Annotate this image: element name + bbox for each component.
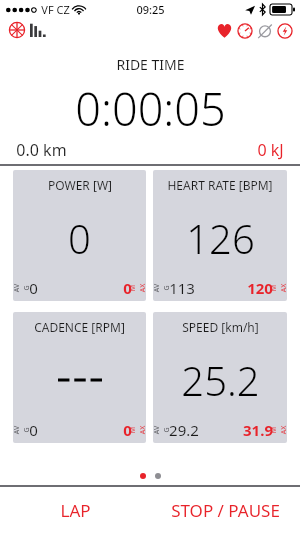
staticText: AVG — [153, 283, 172, 293]
staticText: RIDE TIME — [116, 55, 185, 74]
button[interactable]: Page 1 — [140, 473, 146, 479]
staticText: 0.0 km — [16, 139, 67, 161]
button[interactable]: STOP / PAUSE — [150, 487, 300, 533]
staticText: 0 — [29, 278, 38, 298]
staticText: 0 — [123, 420, 132, 440]
staticText: CADENCE [RPM] — [34, 319, 125, 335]
staticText: MAX — [128, 425, 146, 435]
button[interactable]: HEART RATE [BPM] — [153, 170, 287, 301]
staticText: POWER [W] — [48, 177, 112, 193]
button[interactable]: Cadence sensor disconnected — [257, 23, 273, 39]
staticText: STOP / PAUSE — [171, 499, 280, 522]
staticText: 126 — [186, 211, 255, 265]
button[interactable]: Speed sensor — [237, 23, 253, 39]
staticText: 29.2 — [169, 420, 199, 440]
button[interactable]: CADENCE [RPM] — [13, 312, 146, 443]
staticText: 0 — [29, 420, 38, 440]
staticText: 0 — [123, 278, 132, 298]
staticText: MAX — [128, 283, 146, 293]
staticText: HEART RATE [BPM] — [167, 177, 273, 193]
staticText: MAX — [269, 283, 287, 293]
button[interactable]: Signal strength — [30, 23, 48, 37]
button[interactable]: Heart rate sensor — [216, 22, 233, 39]
staticText: 0 — [68, 211, 91, 265]
staticText: MAX — [269, 425, 287, 435]
button[interactable]: Satellite — [8, 21, 26, 39]
staticText: AVG — [153, 425, 172, 435]
staticText: 25.2 — [181, 353, 260, 407]
button[interactable]: POWER [W] — [13, 170, 146, 301]
button[interactable]: SPEED [km/h] — [153, 312, 287, 443]
staticText: 09:25 — [136, 2, 165, 17]
staticText: LAP — [60, 499, 91, 522]
staticText: AVG — [13, 425, 32, 435]
staticText: AVG — [13, 283, 32, 293]
staticText: 113 — [169, 278, 195, 298]
button[interactable]: Power meter — [277, 23, 293, 39]
staticText: VF CZ — [41, 2, 70, 17]
staticText: 31.9 — [243, 420, 273, 440]
staticText: 0 kJ — [257, 139, 284, 161]
staticText: SPEED [km/h] — [182, 319, 259, 335]
staticText: 120 — [247, 278, 273, 298]
staticText: 0:00:05 — [75, 78, 226, 139]
button[interactable]: Page 2 — [155, 473, 161, 479]
button[interactable]: LAP — [0, 487, 150, 533]
